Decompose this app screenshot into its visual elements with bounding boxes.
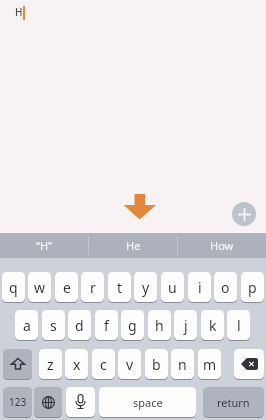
staticText: l [237, 316, 241, 335]
button[interactable] [66, 387, 95, 417]
staticText: How [210, 238, 234, 253]
button[interactable]: c [92, 349, 115, 379]
button[interactable]: He [89, 233, 177, 258]
staticText: space [133, 395, 163, 410]
button[interactable]: j [174, 310, 197, 340]
staticText: a [23, 316, 31, 335]
staticText: s [50, 316, 57, 335]
button[interactable]: y [134, 272, 157, 302]
staticText: w [34, 278, 46, 297]
button[interactable]: g [121, 310, 144, 340]
staticText: u [168, 278, 177, 297]
staticText: t [117, 278, 123, 297]
button[interactable]: n [171, 349, 194, 379]
button[interactable]: 123 [3, 387, 32, 417]
button[interactable]: i [188, 272, 211, 302]
staticText: i [198, 278, 202, 297]
button[interactable]: z [39, 349, 62, 379]
staticText: q [9, 278, 18, 297]
staticText: return [217, 395, 250, 410]
button[interactable]: a [15, 310, 38, 340]
staticText: He [126, 238, 141, 253]
button[interactable] [234, 349, 264, 379]
button[interactable]: t [108, 272, 131, 302]
staticText: f [104, 316, 109, 335]
button[interactable]: x [65, 349, 88, 379]
staticText: c [100, 355, 107, 374]
staticText: 123 [9, 395, 27, 409]
staticText: o [221, 278, 230, 297]
button[interactable]: v [118, 349, 141, 379]
button[interactable]: d [68, 310, 91, 340]
staticText: g [128, 316, 137, 335]
button[interactable]: u [161, 272, 184, 302]
button[interactable] [34, 387, 62, 417]
button[interactable]: k [201, 310, 224, 340]
button[interactable]: q [2, 272, 25, 302]
button[interactable]: space [99, 387, 196, 417]
staticText: m [203, 355, 217, 374]
staticText: v [126, 355, 134, 374]
staticText: e [63, 278, 71, 297]
staticText: H [15, 5, 23, 19]
button[interactable]: p [241, 272, 264, 302]
staticText: p [248, 278, 257, 297]
button[interactable] [3, 349, 32, 379]
button[interactable]: s [42, 310, 65, 340]
button[interactable]: return [203, 387, 264, 417]
button[interactable] [232, 202, 256, 226]
staticText: x [73, 355, 81, 374]
staticText: z [47, 355, 54, 374]
button[interactable]: b [145, 349, 168, 379]
button[interactable]: w [28, 272, 51, 302]
staticText: y [142, 278, 150, 297]
staticText: d [75, 316, 84, 335]
staticText: b [152, 355, 161, 374]
staticText: j [184, 316, 188, 335]
staticText: “H” [36, 238, 53, 253]
button[interactable]: How [178, 233, 266, 258]
button[interactable]: f [95, 310, 118, 340]
button[interactable]: h [148, 310, 171, 340]
button[interactable]: r [81, 272, 104, 302]
button[interactable]: “H” [0, 233, 88, 258]
button[interactable]: e [55, 272, 78, 302]
staticText: k [209, 316, 217, 335]
button[interactable]: m [198, 349, 221, 379]
staticText: n [178, 355, 187, 374]
button[interactable]: o [214, 272, 237, 302]
staticText: h [155, 316, 164, 335]
staticText: r [90, 278, 96, 297]
button[interactable]: l [227, 310, 250, 340]
